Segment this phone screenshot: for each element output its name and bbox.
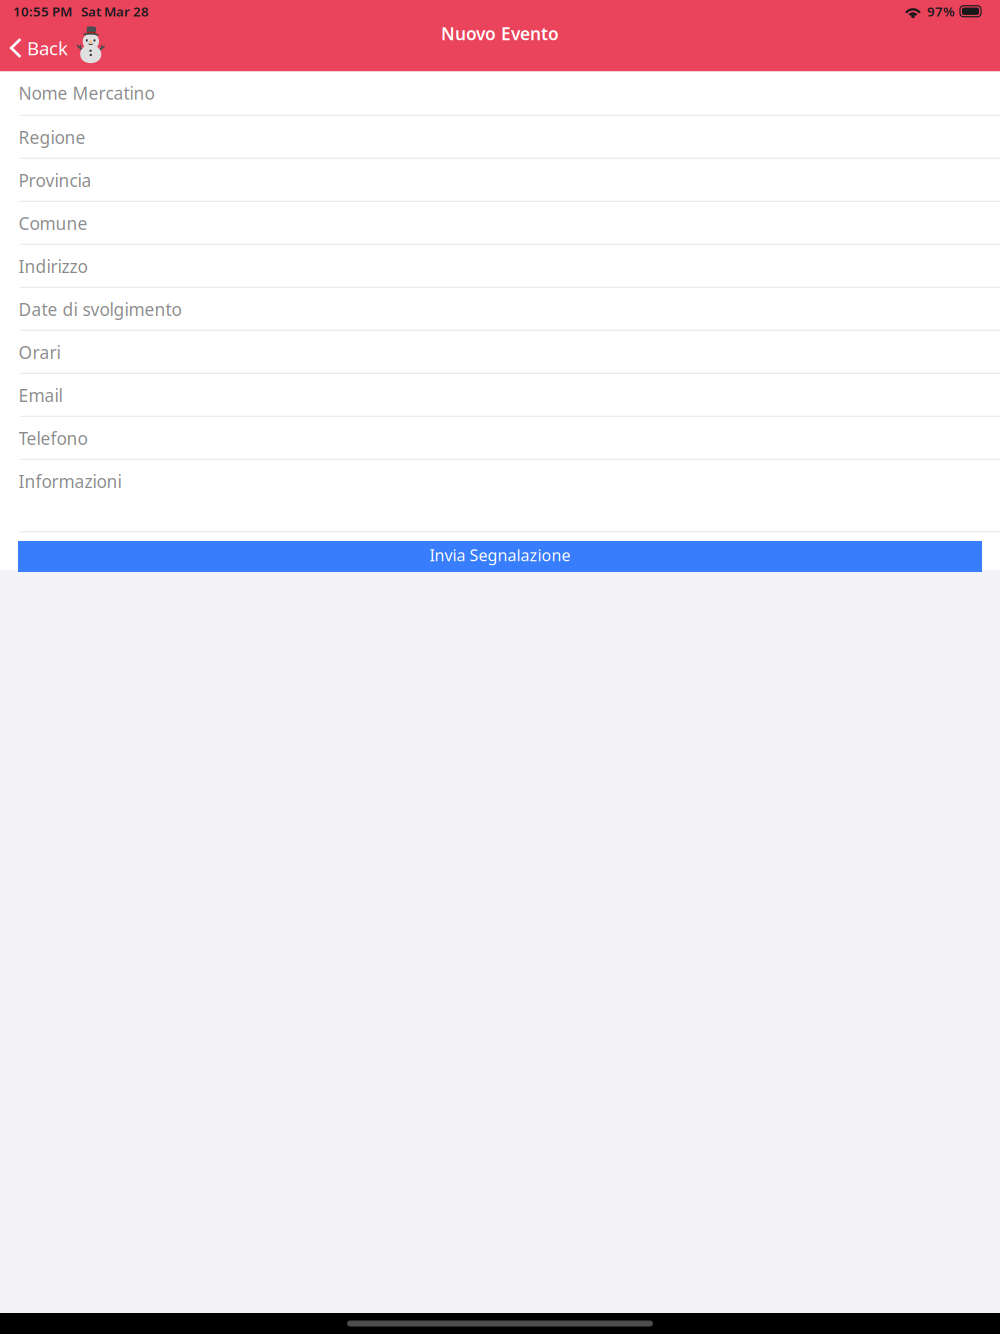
staticText: Telefono <box>18 427 87 450</box>
button[interactable]: Mercatini di Natale <box>74 30 108 65</box>
staticText: Sat Mar 28 <box>81 2 149 20</box>
staticText: Date di svolgimento <box>18 298 181 321</box>
button[interactable]: Informazioni <box>0 460 1000 532</box>
staticText: 10:55 PM <box>13 2 72 20</box>
staticText: Back <box>27 36 68 60</box>
button[interactable]: Regione <box>0 116 1000 159</box>
button[interactable]: Email <box>0 374 1000 417</box>
staticText: Nome Mercatino <box>18 81 154 104</box>
staticText: Regione <box>18 126 85 149</box>
button[interactable]: Invia Segnalazione <box>18 541 982 572</box>
button[interactable]: Orari <box>0 331 1000 374</box>
staticText: Nuovo Evento <box>441 22 559 45</box>
staticText: Provincia <box>18 169 91 192</box>
staticText: Informazioni <box>18 470 121 493</box>
staticText: Email <box>18 384 62 407</box>
staticText: ⛄ <box>70 26 112 64</box>
staticText: Invia Segnalazione <box>429 544 570 566</box>
button[interactable]: Nome Mercatino <box>0 71 1000 116</box>
button[interactable]: Telefono <box>0 417 1000 460</box>
button[interactable]: Back <box>0 30 74 65</box>
button[interactable]: Comune <box>0 202 1000 245</box>
staticText: Orari <box>18 341 60 364</box>
staticText: 97% <box>927 2 955 20</box>
button[interactable]: Date di svolgimento <box>0 288 1000 331</box>
button[interactable]: Indirizzo <box>0 245 1000 288</box>
staticText: Indirizzo <box>18 255 87 278</box>
button[interactable]: Provincia <box>0 159 1000 202</box>
staticText: Comune <box>18 212 87 235</box>
